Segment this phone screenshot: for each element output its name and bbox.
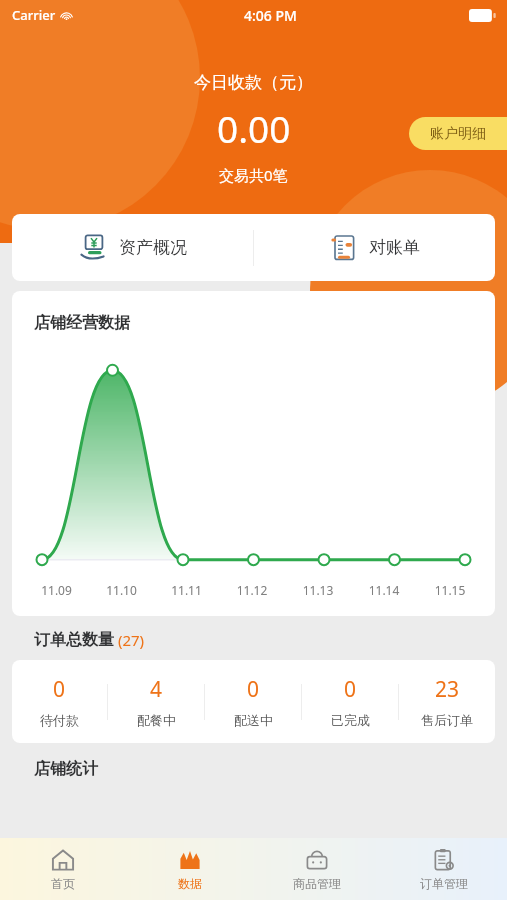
staticText: 订单总数量 [34,630,114,650]
staticText: 4:06 PM [244,6,297,25]
staticText: 23 [435,675,460,704]
button[interactable]: 资产概况 [12,214,253,281]
button[interactable]: 0 [302,660,398,743]
staticText: 配送中 [234,712,273,728]
staticText: 店铺经营数据 [34,313,130,333]
staticText: 11.09 [24,582,89,598]
staticText: 11.11 [154,582,219,598]
staticText: (27) [114,630,145,650]
staticText: 11.15 [417,582,483,598]
button[interactable]: 账户明细 [409,117,507,150]
staticText: 0 [53,675,66,704]
staticText: 已完成 [331,712,370,728]
staticText: 11.10 [89,582,154,598]
button[interactable]: 商品管理 [253,838,380,900]
button[interactable]: 首页 [0,838,126,900]
staticText: 配餐中 [137,712,176,728]
staticText: 11.14 [351,582,417,598]
button[interactable]: 数据 [126,838,253,900]
staticText: 资产概况 [119,237,187,258]
staticText: 待付款 [40,712,79,728]
staticText: 今日收款（元） [194,72,313,93]
staticText: 对账单 [369,237,420,258]
staticText: 订单管理 [420,876,468,891]
staticText: 11.13 [285,582,351,598]
button[interactable]: 23 [399,660,495,743]
staticText: Carrier [12,6,56,24]
staticText: 数据 [178,876,202,891]
staticText: 交易共0笔 [219,165,288,185]
staticText: 商品管理 [293,876,341,891]
staticText: 0.00 [217,103,291,153]
button[interactable]: 对账单 [254,214,495,281]
button[interactable]: 4 [108,660,204,743]
button[interactable]: 订单管理 [380,838,507,900]
staticText: 0 [344,675,357,704]
staticText: 账户明细 [430,125,486,143]
staticText: 店铺统计 [34,759,98,779]
button[interactable]: 0 [12,660,107,743]
staticText: 0 [247,675,260,704]
staticText: 首页 [51,876,75,891]
button[interactable]: 0 [205,660,301,743]
staticText: 售后订单 [421,712,473,728]
staticText: 4 [150,675,163,704]
staticText: 11.12 [219,582,285,598]
